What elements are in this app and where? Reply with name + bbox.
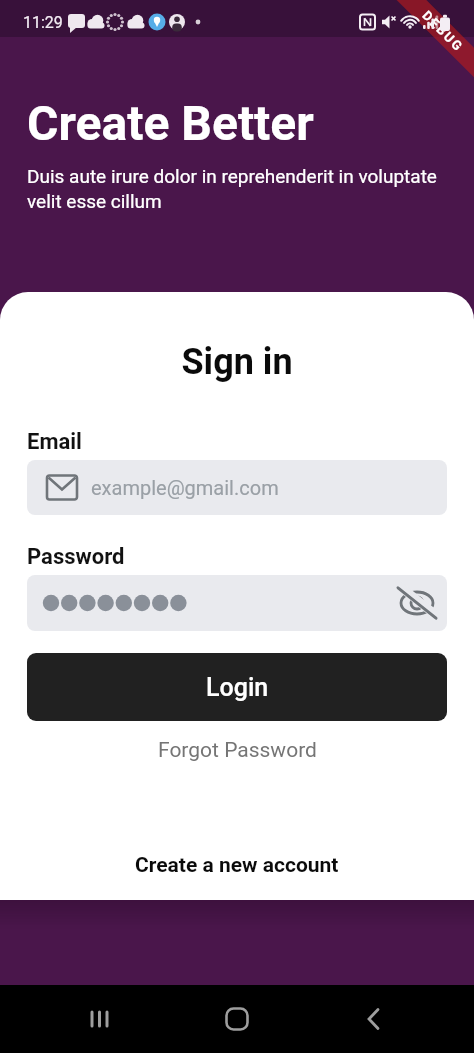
staticText: example@gmail.com <box>91 476 279 499</box>
staticText: Forgot Password <box>158 738 317 763</box>
button[interactable] <box>168 985 305 1053</box>
staticText: Create a new account <box>135 853 339 878</box>
button[interactable] <box>32 985 168 1053</box>
button[interactable] <box>395 581 439 625</box>
staticText: Sign in <box>27 341 447 383</box>
button[interactable]: Login <box>27 653 447 721</box>
staticText: Create Better <box>27 95 314 151</box>
button[interactable] <box>27 575 447 631</box>
button[interactable]: Forgot Password <box>154 734 321 767</box>
staticText: Login <box>206 673 269 702</box>
button[interactable]: example@gmail.com <box>27 460 447 515</box>
staticText: DEBUG <box>419 8 467 55</box>
staticText: Password <box>27 544 125 570</box>
staticText: Duis aute irure dolor in reprehenderit i… <box>27 165 447 212</box>
staticText: Email <box>27 429 82 455</box>
button[interactable] <box>305 985 442 1053</box>
button[interactable]: Create a new account <box>131 849 343 882</box>
staticText: 11:29 <box>23 13 63 32</box>
